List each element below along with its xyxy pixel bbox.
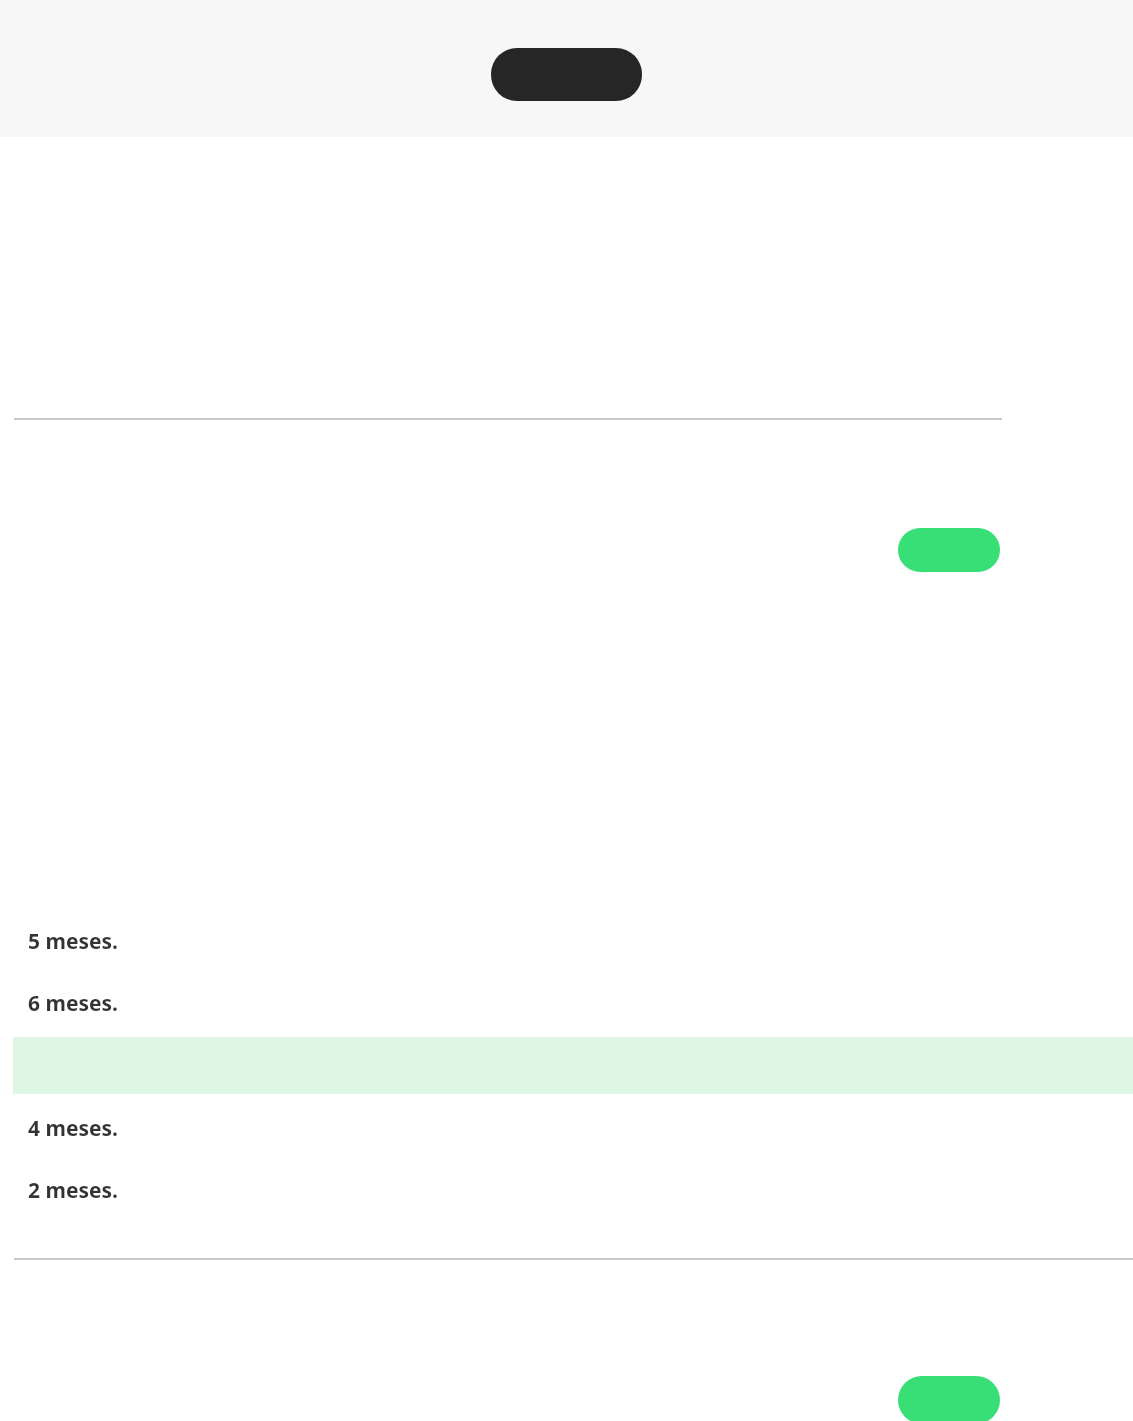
button[interactable]: Logo — [491, 48, 642, 101]
button[interactable]: Continuar — [898, 528, 1000, 572]
button[interactable]: 5 meses. — [0, 921, 1133, 961]
staticText: 2 meses. — [28, 1176, 119, 1205]
staticText: 5 meses. — [28, 927, 119, 956]
button[interactable]: 2 meses. — [0, 1170, 1133, 1210]
button[interactable]: 6 meses. — [0, 983, 1133, 1023]
staticText: 6 meses. — [28, 989, 119, 1018]
button[interactable]: 4 meses. — [0, 1108, 1133, 1148]
button[interactable]: Siguiente — [898, 1376, 1000, 1421]
staticText: 4 meses. — [28, 1114, 119, 1143]
